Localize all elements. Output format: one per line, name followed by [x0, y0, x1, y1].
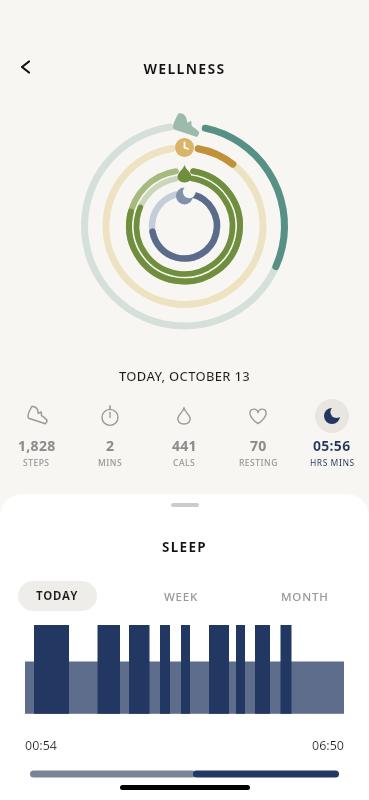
- staticText: MINS: [98, 457, 123, 469]
- button[interactable]: MONTH: [281, 589, 329, 605]
- staticText: 441: [172, 436, 197, 455]
- staticText: STEPS: [23, 457, 50, 469]
- staticText: TODAY: [36, 588, 79, 604]
- button[interactable]: TODAY: [18, 581, 97, 611]
- staticText: WELLNESS: [0, 59, 369, 78]
- staticText: 06:50: [312, 737, 344, 754]
- staticText: HRS MINS: [310, 457, 355, 469]
- staticText: 2: [106, 436, 115, 455]
- button[interactable]: 70: [221, 398, 295, 469]
- button[interactable]: 05:56: [295, 398, 369, 469]
- staticText: 70: [250, 436, 267, 455]
- staticText: TODAY, OCTOBER 13: [0, 367, 369, 385]
- button[interactable]: 2: [73, 398, 147, 469]
- staticText: 00:54: [25, 737, 57, 754]
- staticText: SLEEP: [0, 538, 369, 556]
- button[interactable]: [6, 47, 46, 87]
- button[interactable]: WEEK: [164, 589, 199, 605]
- button[interactable]: 1,828: [0, 398, 73, 469]
- button[interactable]: 441: [147, 398, 221, 469]
- staticText: 05:56: [313, 436, 351, 455]
- staticText: CALS: [173, 457, 196, 469]
- staticText: RESTING: [239, 457, 278, 469]
- staticText: 1,828: [18, 436, 56, 455]
